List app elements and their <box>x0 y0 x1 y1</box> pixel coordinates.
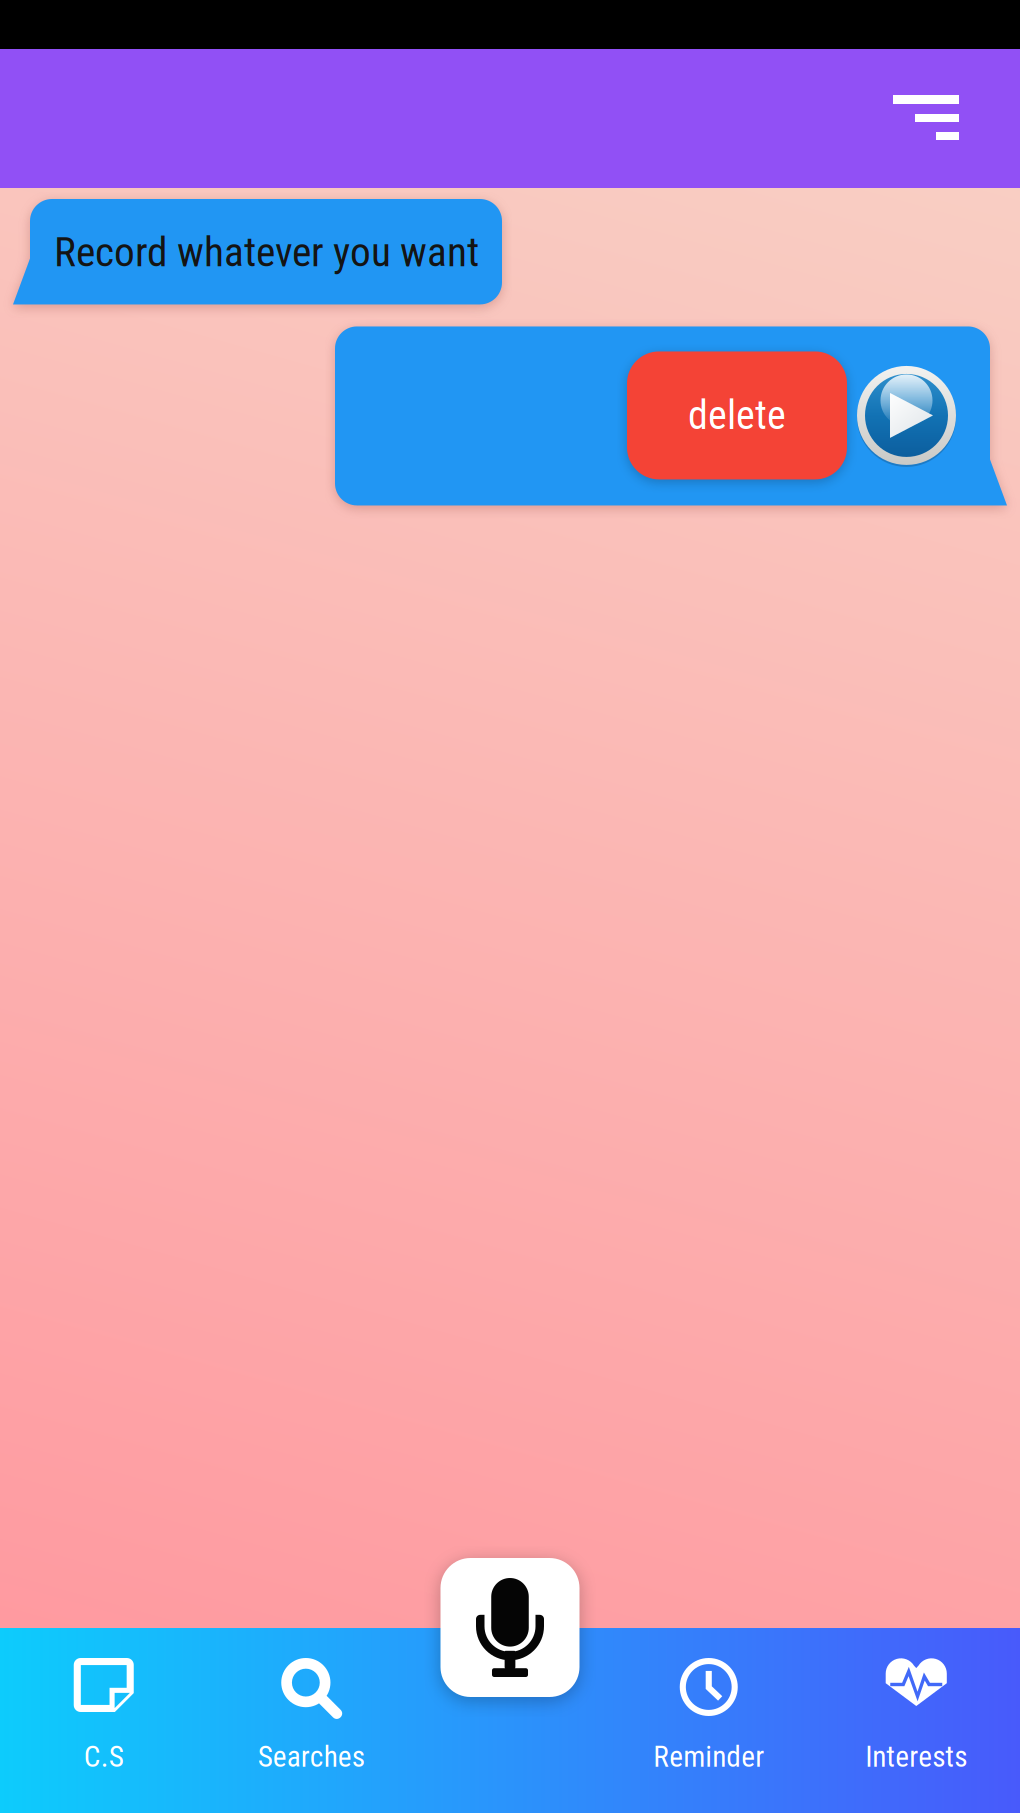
button[interactable]: Play recording <box>857 366 956 465</box>
staticText: Searches <box>258 1740 365 1774</box>
button[interactable]: delete <box>627 351 847 479</box>
button[interactable]: Record <box>440 1558 579 1697</box>
button[interactable]: C.S <box>0 1628 207 1813</box>
button[interactable]: Reminder <box>605 1628 812 1813</box>
staticText: Record whatever you want <box>54 228 479 276</box>
button[interactable]: Menu <box>853 48 1020 189</box>
button[interactable]: Searches <box>207 1628 415 1813</box>
staticText: delete <box>688 392 786 439</box>
staticText: C.S <box>84 1740 124 1774</box>
staticText: Interests <box>865 1740 967 1774</box>
button[interactable]: Interests <box>812 1628 1020 1813</box>
staticText: Reminder <box>653 1740 764 1774</box>
